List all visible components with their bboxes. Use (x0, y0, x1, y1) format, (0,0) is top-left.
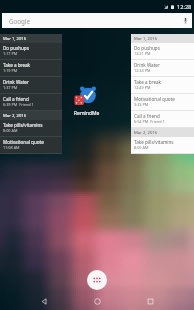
button[interactable]: Apps (87, 270, 107, 290)
staticText: Mar 1, 2016 (3, 36, 27, 42)
staticText: 12:49 PM (134, 85, 151, 90)
staticText: 11:08 AM (3, 145, 20, 150)
staticText: Mar 1, 2016 (134, 36, 158, 42)
staticText: Mar 2, 2016 (3, 113, 27, 119)
staticText: Take a break (134, 79, 162, 85)
staticText: Google (9, 17, 30, 25)
staticText: Take pills/vitamins (3, 122, 43, 128)
button[interactable]: Motivational quote (131, 94, 194, 110)
staticText: Do pushups (134, 45, 160, 51)
button[interactable]: Drink Water (131, 60, 194, 76)
staticText: 1:37 PM (3, 85, 18, 90)
staticText: Call a friend (3, 96, 29, 102)
button[interactable]: Recents (141, 292, 159, 310)
staticText: Do pushups (3, 45, 29, 51)
button[interactable]: Motivational quote (0, 137, 62, 153)
button[interactable]: Take pills/vitamins (131, 137, 194, 153)
button[interactable]: Google (2, 13, 192, 28)
staticText: Drink Water (134, 62, 160, 68)
staticText: Take pills/vitamins (134, 139, 174, 145)
staticText: 1:19 PM (3, 68, 18, 73)
other: Voice search (183, 17, 188, 24)
staticText: Take a break (3, 62, 31, 68)
button[interactable]: Back (35, 292, 53, 310)
staticText: Drink Water (3, 79, 29, 85)
staticText: Motivational quote (3, 139, 44, 145)
staticText: 12:21 PM (134, 51, 151, 56)
button[interactable]: Take a break (0, 60, 62, 76)
button[interactable]: Drink Water (0, 77, 62, 93)
staticText: 12:34 PM (134, 68, 151, 73)
staticText: 6:39 PM Friend 1 (3, 102, 34, 107)
staticText: 1:17 PM (3, 51, 18, 56)
staticText: 8:00 AM (3, 128, 18, 133)
staticText: Mar 2, 2016 (134, 130, 158, 136)
button[interactable]: Call a friend (131, 111, 194, 127)
button[interactable]: Do pushups (0, 43, 62, 59)
button[interactable]: Take pills/vitamins (0, 120, 62, 136)
button[interactable]: Call a friend (0, 94, 62, 110)
button[interactable]: Do pushups (131, 43, 194, 59)
staticText: RemindMe (74, 110, 100, 117)
button[interactable]: Take a break (131, 77, 194, 93)
staticText: 3:33 PM (134, 102, 149, 107)
staticText: 6:54 PM Friend 1 (134, 119, 165, 124)
staticText: Motivational quote (134, 96, 175, 102)
button[interactable]: Home (88, 292, 106, 310)
staticText: 12:28 (177, 3, 192, 11)
staticText: Call a friend (134, 113, 160, 119)
staticText: 8:00 AM (134, 145, 149, 150)
